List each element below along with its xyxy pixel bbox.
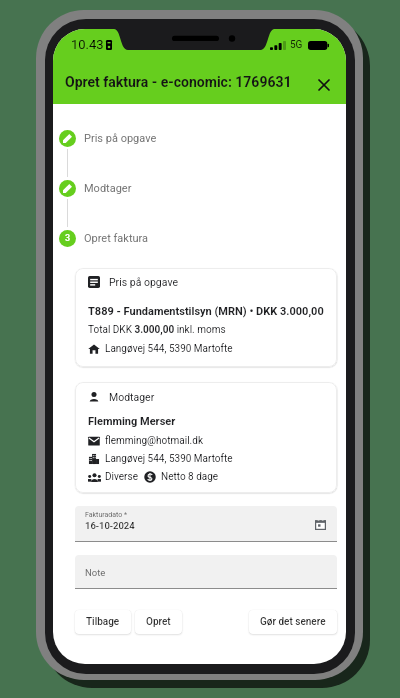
staticText: 16-10-2024: [85, 520, 135, 531]
staticText: Opret faktura: [84, 232, 149, 245]
button[interactable]: Note: [75, 555, 337, 589]
staticText: flemming@hotmail.dk: [105, 435, 203, 447]
staticText: Tilbage: [86, 616, 120, 628]
staticText: Gør det senere: [260, 616, 326, 628]
staticText: Pris på opgave: [84, 132, 157, 145]
staticText: Pris på opgave: [109, 276, 178, 288]
staticText: 5G: [290, 39, 303, 51]
button[interactable]: Luk: [309, 70, 339, 100]
button[interactable]: Pris på opgave: [75, 268, 337, 367]
button[interactable]: Modtager: [75, 382, 337, 493]
staticText: Note: [85, 567, 106, 578]
staticText: Modtager: [84, 182, 132, 195]
staticText: Opret: [146, 616, 171, 628]
staticText: Total DKK 3.000,00 inkl. moms: [88, 324, 226, 336]
button[interactable]: Opret: [135, 610, 182, 634]
button[interactable]: [59, 130, 76, 147]
staticText: Langøvej 544, 5390 Martofte: [105, 453, 233, 465]
staticText: 10.43: [71, 37, 104, 52]
staticText: 3: [65, 233, 71, 244]
button[interactable]: [59, 180, 76, 197]
button[interactable]: 3: [59, 230, 76, 247]
staticText: T889 - Fundamentstilsyn (MRN) • DKK 3.00…: [88, 305, 324, 318]
button[interactable]: Tilbage: [75, 610, 131, 634]
staticText: Modtager: [109, 391, 155, 403]
button[interactable]: Fakturadato *: [75, 506, 337, 542]
staticText: Diverse: [105, 471, 138, 483]
staticText: Flemming Merser: [88, 415, 176, 428]
staticText: Langøvej 544, 5390 Martofte: [105, 343, 233, 355]
button[interactable]: Gør det senere: [249, 610, 337, 634]
staticText: Fakturadato *: [85, 511, 128, 519]
staticText: Netto 8 dage: [161, 471, 219, 483]
staticText: Opret faktura - e-conomic: 1769631: [65, 74, 292, 90]
other: Vælg dato: [315, 519, 326, 530]
